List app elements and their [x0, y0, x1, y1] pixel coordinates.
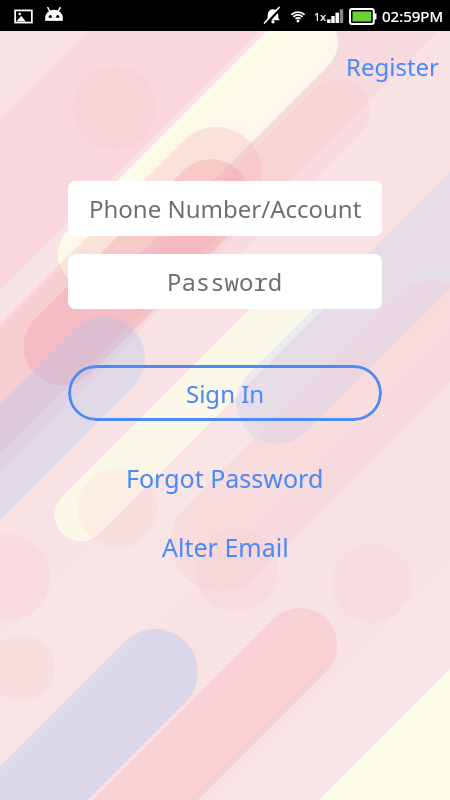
other: Silent mode [264, 7, 282, 25]
button[interactable]: Sign In [68, 365, 382, 421]
button[interactable]: Password [68, 254, 382, 309]
button[interactable]: Phone Number/Account [68, 181, 382, 236]
button[interactable]: Forgot Password [108, 453, 342, 503]
button[interactable]: Register [332, 43, 450, 90]
staticText: 02:59PM [382, 6, 444, 26]
staticText: Alter Email [162, 530, 289, 564]
other: Wi-Fi [289, 7, 307, 25]
staticText: Password [167, 265, 283, 298]
staticText: 1x [314, 9, 327, 24]
staticText: Forgot Password [126, 461, 324, 495]
staticText: Sign In [186, 377, 265, 410]
staticText: Register [346, 50, 440, 83]
staticText: Phone Number/Account [89, 192, 362, 225]
button[interactable]: Alter Email [144, 522, 307, 572]
